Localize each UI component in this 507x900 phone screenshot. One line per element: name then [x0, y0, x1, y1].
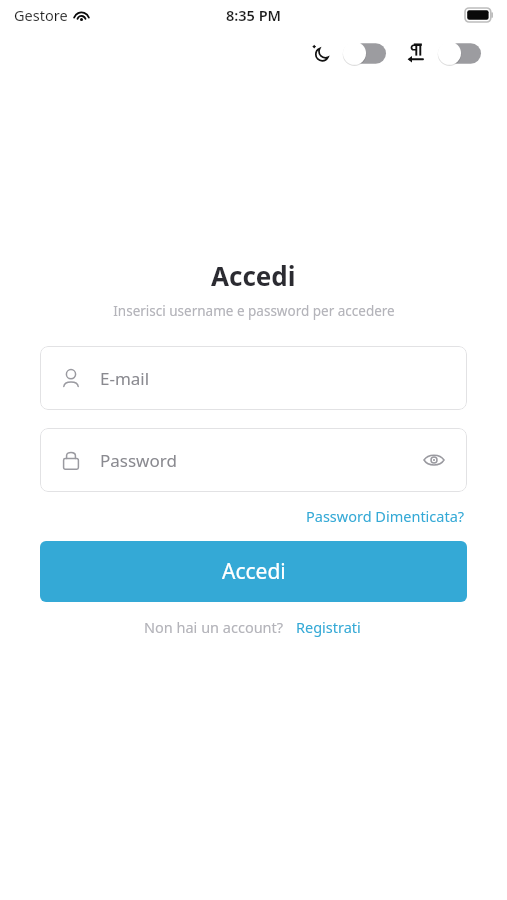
staticText: Accedi [222, 557, 286, 586]
staticText: Registrati [296, 617, 361, 637]
button[interactable]: Password Dimenticata? [304, 504, 467, 528]
staticText: Gestore [14, 5, 68, 25]
button[interactable]: Tema scuro [308, 40, 334, 66]
button[interactable]: Accedi [40, 541, 467, 602]
staticText: E-mail [100, 367, 150, 390]
staticText: Accedi [211, 258, 296, 293]
staticText: Inserisci username e password per accede… [113, 302, 395, 320]
button[interactable]: Attiva direzione testo RTL [437, 41, 481, 66]
staticText: 8:35 PM [226, 5, 282, 25]
button[interactable]: Mostra password [421, 447, 447, 473]
button[interactable]: Direzione testo [403, 40, 429, 66]
staticText: Password Dimenticata? [306, 506, 465, 526]
staticText: Non hai un account? [144, 617, 284, 637]
staticText: Password [100, 449, 177, 472]
button[interactable]: E-mail [40, 346, 467, 410]
button[interactable]: Attiva tema scuro [342, 41, 386, 66]
button[interactable]: Password [40, 428, 467, 492]
button[interactable]: Registrati [294, 615, 363, 639]
